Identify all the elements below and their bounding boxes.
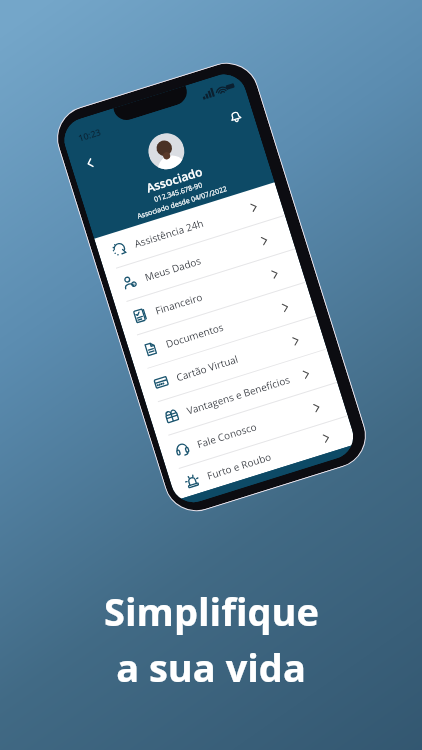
button[interactable]: Documentos bbox=[126, 282, 316, 371]
button[interactable]: Assistência 24h bbox=[94, 182, 285, 271]
button[interactable]: Furto e Roubo bbox=[167, 416, 356, 500]
button[interactable]: Notificações bbox=[222, 104, 248, 129]
button[interactable]: Financeiro bbox=[115, 249, 306, 338]
staticText: a sua vida bbox=[116, 641, 306, 693]
staticText: Assistência 24h bbox=[132, 216, 205, 251]
staticText: Cartão Virtual bbox=[174, 351, 241, 384]
button[interactable]: Fale Conosco bbox=[157, 383, 347, 472]
staticText: Meus Dados bbox=[143, 253, 202, 284]
staticText: Furto e Roubo bbox=[205, 449, 273, 483]
staticText: Documentos bbox=[164, 320, 225, 351]
staticText: Vantagens e Benefícios bbox=[185, 372, 292, 418]
staticText: Associado desde 04/07/2022 bbox=[136, 184, 229, 222]
button[interactable]: Cartão Virtual bbox=[136, 316, 327, 405]
staticText: Financeiro bbox=[153, 289, 204, 317]
button[interactable]: Meus Dados bbox=[105, 216, 295, 305]
staticText: 10:23 bbox=[77, 125, 103, 144]
button[interactable]: Voltar bbox=[77, 150, 102, 175]
staticText: 012.345.678-90 bbox=[153, 180, 205, 205]
staticText: Fale Conosco bbox=[195, 419, 259, 451]
staticText: Associado bbox=[144, 163, 205, 196]
button[interactable]: Vantagens e Benefícios bbox=[147, 349, 337, 438]
staticText: Simplifique bbox=[104, 585, 319, 637]
